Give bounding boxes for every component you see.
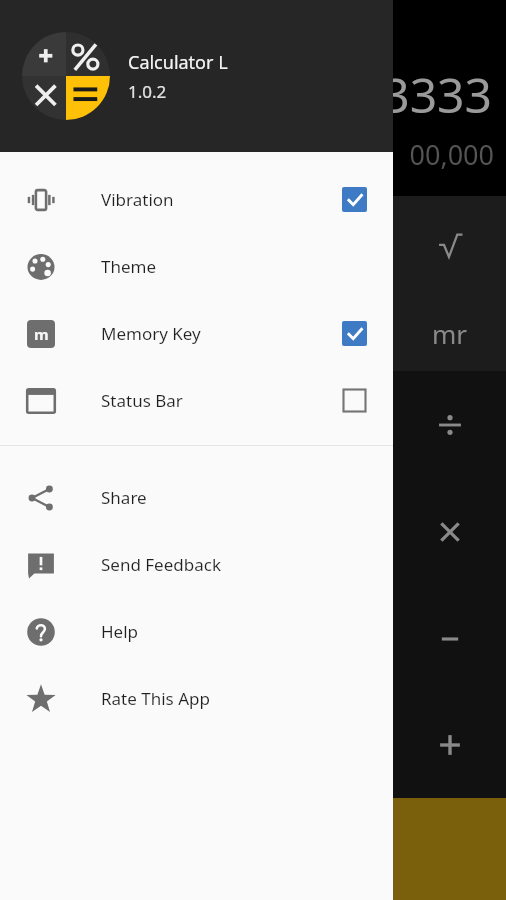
staticText: Calculator L bbox=[128, 50, 228, 75]
staticText: 1.0.2 bbox=[128, 80, 167, 103]
button[interactable]: m bbox=[0, 300, 393, 367]
staticText: Send Feedback bbox=[101, 553, 367, 576]
button[interactable] bbox=[0, 196, 506, 295]
staticText: mr bbox=[432, 316, 468, 351]
button[interactable]: Status Bar bbox=[0, 367, 393, 434]
button[interactable]: Calculator L bbox=[0, 0, 393, 152]
button[interactable]: Rate This App bbox=[0, 665, 393, 732]
button[interactable] bbox=[0, 478, 506, 585]
staticText: Share bbox=[101, 486, 367, 509]
button[interactable]: mr bbox=[0, 295, 506, 371]
staticText: 3333 bbox=[382, 62, 492, 127]
button[interactable] bbox=[0, 371, 506, 478]
button[interactable]: Help bbox=[0, 598, 393, 665]
button[interactable]: Theme bbox=[0, 233, 393, 300]
staticText: Rate This App bbox=[101, 687, 367, 710]
button[interactable] bbox=[0, 692, 506, 798]
staticText: Memory Key bbox=[101, 322, 342, 345]
staticText: Help bbox=[101, 620, 367, 643]
button[interactable]: Vibration bbox=[0, 166, 393, 233]
button[interactable]: Share bbox=[0, 464, 393, 531]
staticText: 00,000 bbox=[409, 136, 494, 173]
staticText: Status Bar bbox=[101, 389, 342, 412]
staticText: Theme bbox=[101, 255, 367, 278]
button[interactable] bbox=[0, 798, 506, 900]
staticText: Vibration bbox=[101, 188, 342, 211]
button[interactable]: Send Feedback bbox=[0, 531, 393, 598]
staticText: m bbox=[34, 324, 49, 344]
button[interactable] bbox=[0, 585, 506, 692]
